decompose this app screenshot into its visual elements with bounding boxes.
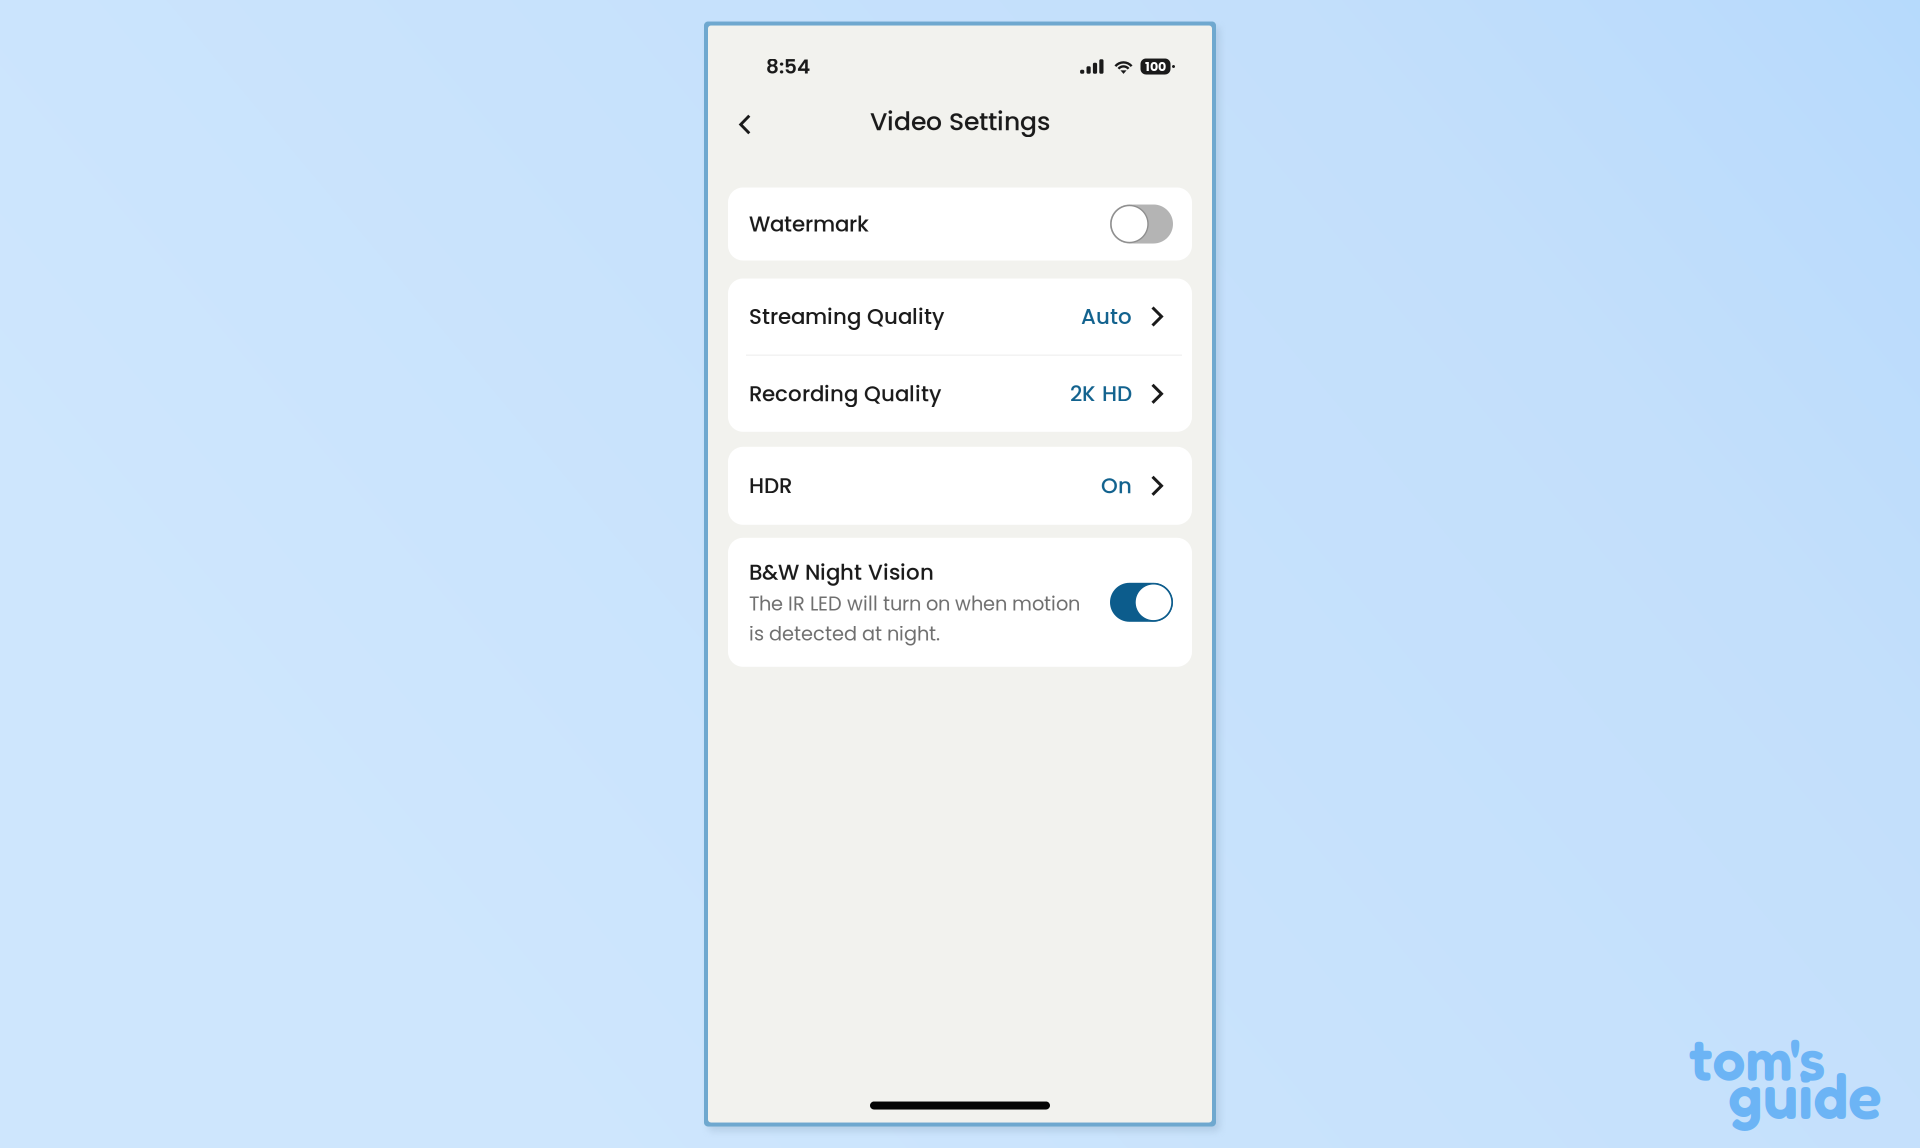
button[interactable]: HDR xyxy=(728,447,1192,525)
staticText: 2K HD xyxy=(1070,379,1132,409)
staticText: Video Settings xyxy=(870,104,1050,139)
staticText: The IR LED will turn on when motion xyxy=(749,590,1080,617)
staticText: Recording Quality xyxy=(749,379,941,409)
button[interactable]: B&W Night Vision xyxy=(728,538,1192,667)
staticText: HDR xyxy=(749,471,792,501)
button[interactable]: Recording Quality xyxy=(728,356,1192,432)
staticText: B&W Night Vision xyxy=(749,557,934,587)
staticText: 100 xyxy=(1145,58,1166,75)
staticText: Auto xyxy=(1081,302,1132,331)
button[interactable]: Streaming Quality xyxy=(728,278,1192,354)
staticText: guide xyxy=(1728,1057,1882,1133)
staticText: 8:54 xyxy=(766,52,810,80)
staticText: is detected at night. xyxy=(749,620,940,647)
button[interactable]: Back xyxy=(728,98,762,144)
staticText: tom's xyxy=(1688,1022,1825,1093)
staticText: On xyxy=(1101,471,1132,501)
staticText: Watermark xyxy=(749,209,869,239)
staticText: Streaming Quality xyxy=(749,302,944,331)
button[interactable]: Watermark xyxy=(728,187,1192,260)
